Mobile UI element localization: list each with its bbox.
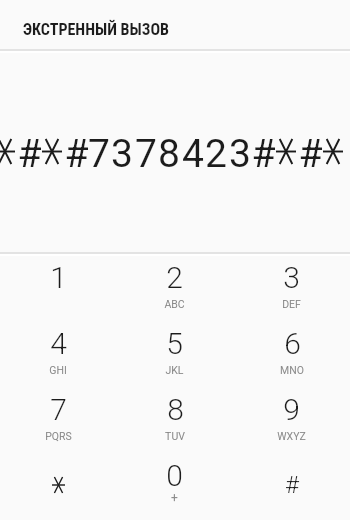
staticText: 6 (284, 326, 301, 361)
staticText: 4 (182, 131, 204, 177)
button[interactable]: 9 (233, 392, 350, 454)
button[interactable]: 6 (233, 326, 350, 388)
button[interactable]: 0 (116, 458, 233, 520)
staticText: JKL (165, 364, 184, 376)
staticText: PQRS (45, 430, 72, 442)
staticText: 3 (111, 131, 133, 177)
button[interactable]: 7 (0, 392, 116, 454)
staticText: # (298, 131, 323, 177)
staticText: 3 (229, 131, 251, 177)
staticText: 3 (283, 260, 300, 295)
staticText: 2 (205, 131, 227, 177)
staticText: ЭКСТРЕННЫЙ ВЫЗОВ (23, 20, 170, 39)
staticText: + (171, 491, 178, 505)
staticText: # (17, 131, 42, 177)
staticText: 7 (88, 131, 110, 177)
staticText: 4 (50, 326, 67, 361)
staticText: 5 (166, 326, 183, 361)
staticText: ABC (164, 298, 185, 310)
button[interactable]: 5 (116, 326, 233, 388)
button[interactable]: 3 (233, 260, 350, 322)
staticText: GHI (49, 364, 67, 376)
staticText: 8 (167, 392, 184, 427)
button[interactable]: # (233, 458, 350, 520)
button[interactable]: 4 (0, 326, 116, 388)
staticText: # (251, 131, 276, 177)
staticText: 1 (50, 260, 67, 295)
staticText: WXYZ (277, 430, 306, 442)
staticText: 7 (50, 392, 67, 427)
button[interactable]: 8 (116, 392, 233, 454)
button[interactable] (0, 458, 116, 520)
staticText: # (64, 131, 89, 177)
staticText: 9 (283, 392, 300, 427)
staticText: TUV (165, 430, 185, 442)
staticText: 8 (158, 131, 180, 177)
staticText: MNO (280, 364, 304, 376)
button[interactable]: 2 (116, 260, 233, 322)
staticText: DEF (282, 298, 301, 310)
staticText: 2 (166, 260, 183, 295)
staticText: 0 (166, 458, 183, 493)
staticText: 7 (135, 131, 157, 177)
button[interactable]: 1 (0, 260, 116, 322)
staticText: # (285, 471, 299, 499)
